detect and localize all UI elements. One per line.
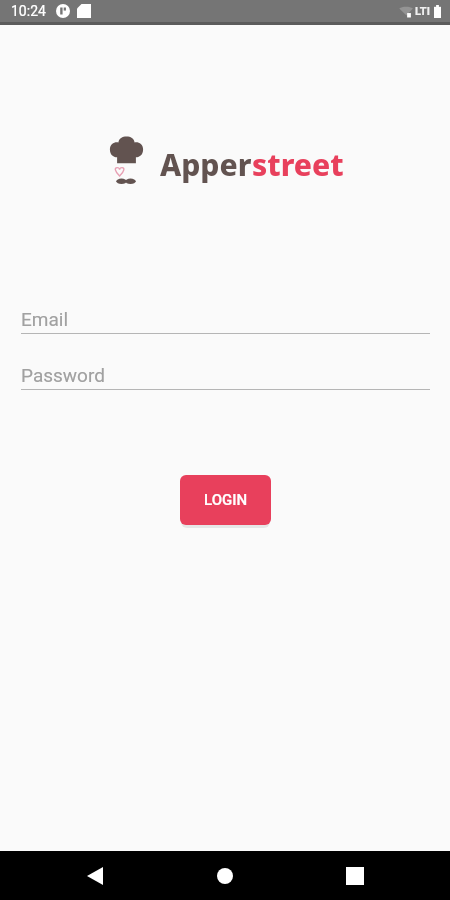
staticText: 10:24 [11, 3, 46, 19]
staticText: street [252, 144, 344, 185]
staticText: LTI [415, 5, 430, 18]
button[interactable]: Recent apps [331, 852, 379, 900]
button[interactable]: Home [201, 852, 249, 900]
staticText: Apper [160, 144, 252, 185]
button[interactable]: LOGIN [180, 475, 271, 525]
button[interactable]: Password [0, 349, 450, 390]
staticText: Password [21, 364, 105, 386]
button[interactable]: Back [71, 852, 119, 900]
button[interactable]: Email [0, 293, 450, 334]
staticText: Email [21, 308, 69, 330]
staticText: LOGIN [204, 491, 248, 509]
